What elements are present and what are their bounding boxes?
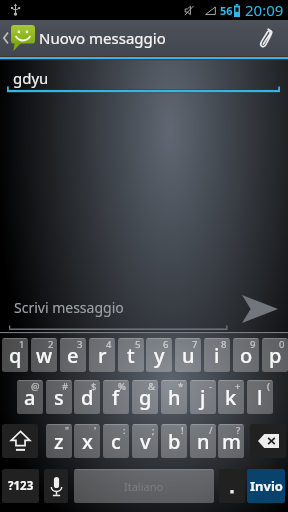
button[interactable]: 0: [262, 338, 288, 372]
staticText: q: [9, 342, 22, 369]
button[interactable]: 6: [146, 338, 172, 372]
staticText: h: [168, 384, 181, 411]
staticText: 3: [77, 338, 83, 351]
staticText: +: [235, 380, 241, 393]
staticText: &: [148, 380, 155, 393]
staticText: gdyu: [13, 68, 49, 88]
button[interactable]: -: [190, 380, 216, 414]
staticText: (: [267, 380, 270, 393]
button[interactable]: %: [103, 380, 129, 414]
staticText: 5: [135, 338, 141, 351]
staticText: ?: [236, 424, 241, 437]
button[interactable]: Invio: [247, 469, 285, 503]
button[interactable]: Italiano: [74, 469, 214, 503]
staticText: -: [209, 380, 213, 393]
staticText: 8: [221, 338, 227, 351]
staticText: ": [65, 424, 69, 437]
staticText: r: [98, 342, 107, 369]
button[interactable]: 1: [2, 338, 28, 372]
staticText: 0: [279, 338, 285, 351]
button[interactable]: 5: [118, 338, 144, 372]
button[interactable]: ;: [132, 424, 158, 458]
button[interactable]: Allega: [242, 20, 288, 56]
button[interactable]: #: [46, 380, 72, 414]
button[interactable]: Cancella: [250, 424, 286, 458]
staticText: *: [178, 380, 184, 393]
button[interactable]: 8: [204, 338, 230, 372]
staticText: i: [214, 342, 220, 369]
staticText: a: [24, 384, 36, 411]
staticText: d: [81, 384, 94, 411]
staticText: !: [181, 424, 184, 437]
staticText: g: [139, 384, 152, 411]
button[interactable]: @: [17, 380, 43, 414]
button[interactable]: ?123: [2, 469, 39, 503]
staticText: l: [257, 384, 263, 411]
staticText: 7: [192, 338, 198, 351]
button[interactable]: &: [132, 380, 158, 414]
staticText: ;: [152, 424, 155, 437]
button[interactable]: 9: [233, 338, 259, 372]
staticText: 6: [163, 338, 169, 351]
staticText: Invio: [250, 477, 283, 495]
staticText: 20:09: [245, 0, 284, 20]
staticText: @: [31, 380, 40, 393]
staticText: j: [200, 384, 206, 411]
button[interactable]: ": [46, 424, 72, 458]
button[interactable]: Maiuscole: [2, 424, 38, 458]
button[interactable]: (: [247, 380, 273, 414]
staticText: ?123: [8, 478, 34, 494]
staticText: /: [209, 424, 213, 437]
staticText: n: [197, 428, 210, 455]
staticText: x: [82, 428, 93, 455]
button[interactable]: 2: [31, 338, 57, 372]
staticText: 9: [250, 338, 256, 351]
button[interactable]: /: [190, 424, 216, 458]
button[interactable]: $: [74, 380, 100, 414]
button[interactable]: !: [161, 424, 187, 458]
staticText: Italiano: [124, 479, 164, 494]
staticText: z: [54, 428, 64, 455]
staticText: s: [54, 384, 64, 411]
staticText: Scrivi messaggio: [14, 298, 124, 317]
staticText: %: [118, 380, 126, 393]
staticText: e: [67, 342, 79, 369]
button[interactable]: Nuovo messaggio: [0, 20, 166, 56]
button[interactable]: *: [161, 380, 187, 414]
button[interactable]: Voce: [44, 469, 68, 503]
staticText: :: [123, 424, 126, 437]
staticText: f: [112, 384, 120, 411]
staticText: o: [240, 342, 253, 369]
staticText: 4: [106, 338, 112, 351]
button[interactable]: ?: [218, 424, 244, 458]
staticText: 2: [48, 338, 54, 351]
staticText: w: [36, 342, 53, 369]
staticText: v: [140, 428, 151, 455]
staticText: 1: [19, 338, 25, 351]
staticText: $: [91, 380, 97, 393]
button[interactable]: 3: [60, 338, 86, 372]
button[interactable]: 7: [175, 338, 201, 372]
button[interactable]: 4: [89, 338, 115, 372]
staticText: u: [182, 342, 195, 369]
staticText: #: [62, 380, 69, 393]
staticText: p: [269, 342, 282, 369]
staticText: t: [127, 342, 135, 369]
staticText: ': [94, 424, 97, 437]
staticText: y: [154, 342, 165, 369]
staticText: b: [168, 428, 181, 455]
button[interactable]: ': [74, 424, 100, 458]
button[interactable]: :: [103, 424, 129, 458]
staticText: Nuovo messaggio: [39, 28, 166, 48]
button[interactable]: gdyu: [0, 60, 288, 94]
staticText: k: [225, 384, 237, 411]
button[interactable]: Punto: [219, 469, 245, 503]
button[interactable]: +: [218, 380, 244, 414]
button[interactable]: Invia: [232, 286, 288, 332]
staticText: m: [222, 428, 241, 455]
staticText: 56: [220, 3, 233, 18]
staticText: c: [111, 428, 121, 455]
